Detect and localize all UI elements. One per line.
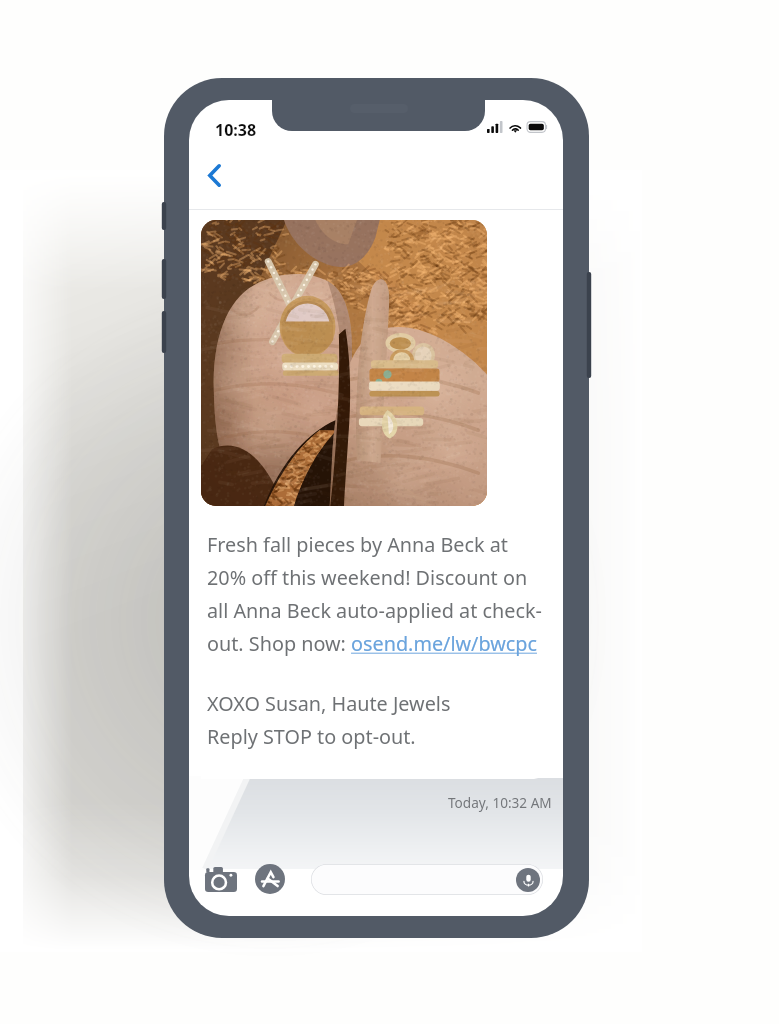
staticText: XOXO Susan, Haute Jewels Reply STOP to o… bbox=[207, 690, 451, 750]
staticText: Fresh fall pieces by Anna Beck at 20% of… bbox=[207, 531, 542, 657]
button[interactable]: Dictate bbox=[516, 868, 540, 892]
staticText: Today, 10:32 AM bbox=[448, 793, 552, 812]
button[interactable]: App Store bbox=[250, 859, 290, 899]
button[interactable]: Back bbox=[192, 153, 236, 197]
button[interactable]: Camera bbox=[198, 859, 244, 899]
staticText: 10:38 bbox=[215, 119, 257, 141]
button[interactable]: Dictate bbox=[311, 864, 543, 895]
